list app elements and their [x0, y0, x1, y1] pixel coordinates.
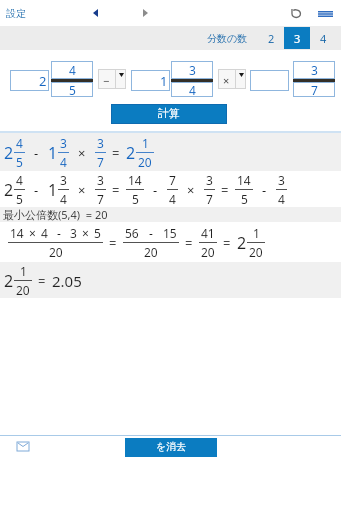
- staticText: 5: [16, 154, 23, 170]
- staticText: 14: [237, 172, 251, 188]
- staticText: 14: [10, 225, 24, 241]
- button[interactable]: 2: [0, 262, 341, 298]
- staticText: 4: [169, 191, 176, 207]
- staticText: -: [34, 181, 39, 199]
- staticText: 分数の数: [207, 32, 248, 45]
- staticText: 2: [237, 232, 247, 254]
- button[interactable]: Previous: [86, 4, 104, 22]
- staticText: 4: [41, 225, 48, 241]
- staticText: 4: [60, 191, 67, 207]
- staticText: 20: [201, 244, 215, 260]
- button[interactable]: 2: [10, 70, 49, 91]
- staticText: 2: [4, 270, 14, 292]
- staticText: 4: [16, 135, 23, 151]
- button[interactable]: Mail: [15, 438, 31, 454]
- button[interactable]: 3: [284, 27, 310, 49]
- staticText: 5: [132, 191, 139, 207]
- button[interactable]: [250, 70, 289, 91]
- button[interactable]: Operator: [218, 69, 246, 89]
- staticText: ×: [78, 144, 86, 162]
- staticText: 1: [142, 135, 149, 151]
- staticText: 計算: [158, 106, 180, 120]
- staticText: 4: [189, 82, 196, 97]
- staticText: 41: [201, 225, 215, 241]
- staticText: 1: [160, 72, 168, 90]
- staticText: 5: [69, 82, 76, 97]
- staticText: 2: [4, 179, 14, 201]
- button[interactable]: を消去: [125, 438, 217, 457]
- staticText: 3: [311, 62, 318, 78]
- staticText: -: [262, 181, 267, 199]
- staticText: 1: [48, 179, 58, 201]
- button[interactable]: 5: [51, 82, 93, 97]
- staticText: =: [221, 181, 229, 199]
- staticText: 14: [128, 172, 142, 188]
- staticText: 3: [206, 172, 213, 188]
- button[interactable]: Menu: [316, 4, 335, 23]
- staticText: 2.05: [52, 271, 82, 291]
- button[interactable]: 4: [51, 61, 93, 79]
- button[interactable]: 2: [258, 27, 284, 49]
- staticText: 1: [253, 225, 260, 241]
- button[interactable]: Undo: [287, 5, 303, 21]
- button[interactable]: Operator: [98, 69, 126, 89]
- staticText: 4: [69, 62, 76, 78]
- staticText: 15: [163, 225, 177, 241]
- button[interactable]: 14: [0, 222, 341, 262]
- button[interactable]: 3: [171, 61, 213, 79]
- staticText: 1: [20, 263, 27, 279]
- staticText: 7: [97, 191, 104, 207]
- staticText: 2: [268, 31, 275, 46]
- staticText: -: [34, 144, 39, 162]
- staticText: 3: [70, 225, 77, 241]
- staticText: 5: [16, 191, 23, 207]
- staticText: =: [223, 234, 231, 252]
- button[interactable]: 2: [0, 133, 341, 171]
- button[interactable]: 7: [293, 82, 335, 97]
- staticText: 3: [294, 31, 301, 46]
- staticText: 2: [4, 142, 14, 164]
- button[interactable]: 計算: [111, 104, 227, 124]
- staticText: 20: [16, 282, 30, 298]
- staticText: 3: [97, 172, 104, 188]
- staticText: 20: [144, 244, 158, 260]
- staticText: -: [149, 225, 153, 241]
- button[interactable]: 設定: [6, 7, 26, 20]
- staticText: ×: [187, 181, 195, 199]
- button[interactable]: 2: [0, 171, 341, 207]
- staticText: 1: [48, 142, 58, 164]
- button[interactable]: 3: [293, 61, 335, 79]
- staticText: 3: [189, 62, 196, 78]
- staticText: 4: [320, 31, 327, 46]
- staticText: ×: [78, 181, 86, 199]
- staticText: 3: [60, 135, 67, 151]
- staticText: 7: [311, 82, 318, 97]
- staticText: 7: [206, 191, 213, 207]
- staticText: 3: [60, 172, 67, 188]
- staticText: 2: [39, 72, 47, 90]
- staticText: -: [153, 181, 158, 199]
- staticText: 56: [125, 225, 139, 241]
- staticText: =: [112, 181, 120, 199]
- staticText: -: [57, 225, 61, 241]
- staticText: ×: [29, 225, 36, 241]
- staticText: 5: [241, 191, 248, 207]
- staticText: 4: [16, 172, 23, 188]
- staticText: =: [109, 234, 117, 252]
- staticText: 20: [249, 244, 263, 260]
- staticText: 5: [94, 225, 101, 241]
- staticText: =: [38, 272, 46, 290]
- button[interactable]: 1: [131, 70, 170, 91]
- staticText: 最小公倍数(5,4) = 20: [3, 207, 108, 222]
- staticText: 4: [278, 191, 285, 207]
- staticText: −: [103, 73, 110, 88]
- button[interactable]: Next: [136, 4, 154, 22]
- staticText: 7: [97, 154, 104, 170]
- staticText: 3: [278, 172, 285, 188]
- button[interactable]: 4: [171, 82, 213, 97]
- staticText: を消去: [156, 440, 187, 453]
- staticText: 20: [138, 154, 152, 170]
- staticText: 2: [126, 142, 136, 164]
- button[interactable]: 4: [310, 27, 336, 49]
- staticText: 3: [97, 135, 104, 151]
